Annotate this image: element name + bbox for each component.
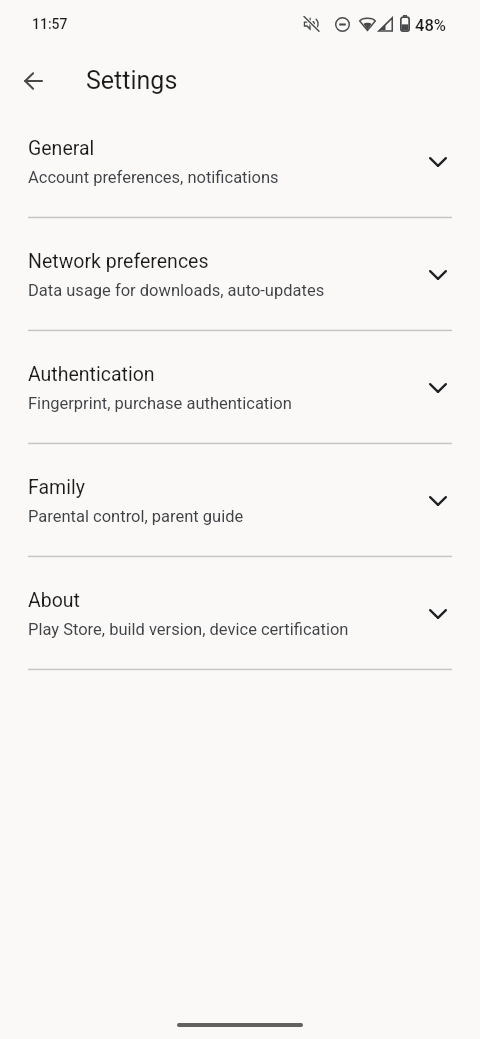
staticText: Family [28,476,85,499]
button[interactable]: Authentication [0,331,480,444]
button[interactable]: Network preferences [0,218,480,331]
button[interactable]: Family [0,444,480,557]
staticText: General [28,137,95,160]
staticText: Data usage for downloads, auto-updates [28,281,325,300]
staticText: Network preferences [28,250,209,273]
staticText: Play Store, build version, device certif… [28,620,349,639]
staticText: Settings [86,66,178,95]
staticText: Parental control, parent guide [28,507,244,526]
button[interactable]: General [0,105,480,218]
staticText: About [28,589,80,612]
staticText: Account preferences, notifications [28,168,279,187]
staticText: 48% [415,16,446,35]
staticText: Authentication [28,363,155,386]
staticText: 11:57 [32,16,68,32]
staticText: Fingerprint, purchase authentication [28,394,292,413]
button[interactable]: About [0,557,480,670]
button[interactable]: Navigate up [9,57,57,105]
